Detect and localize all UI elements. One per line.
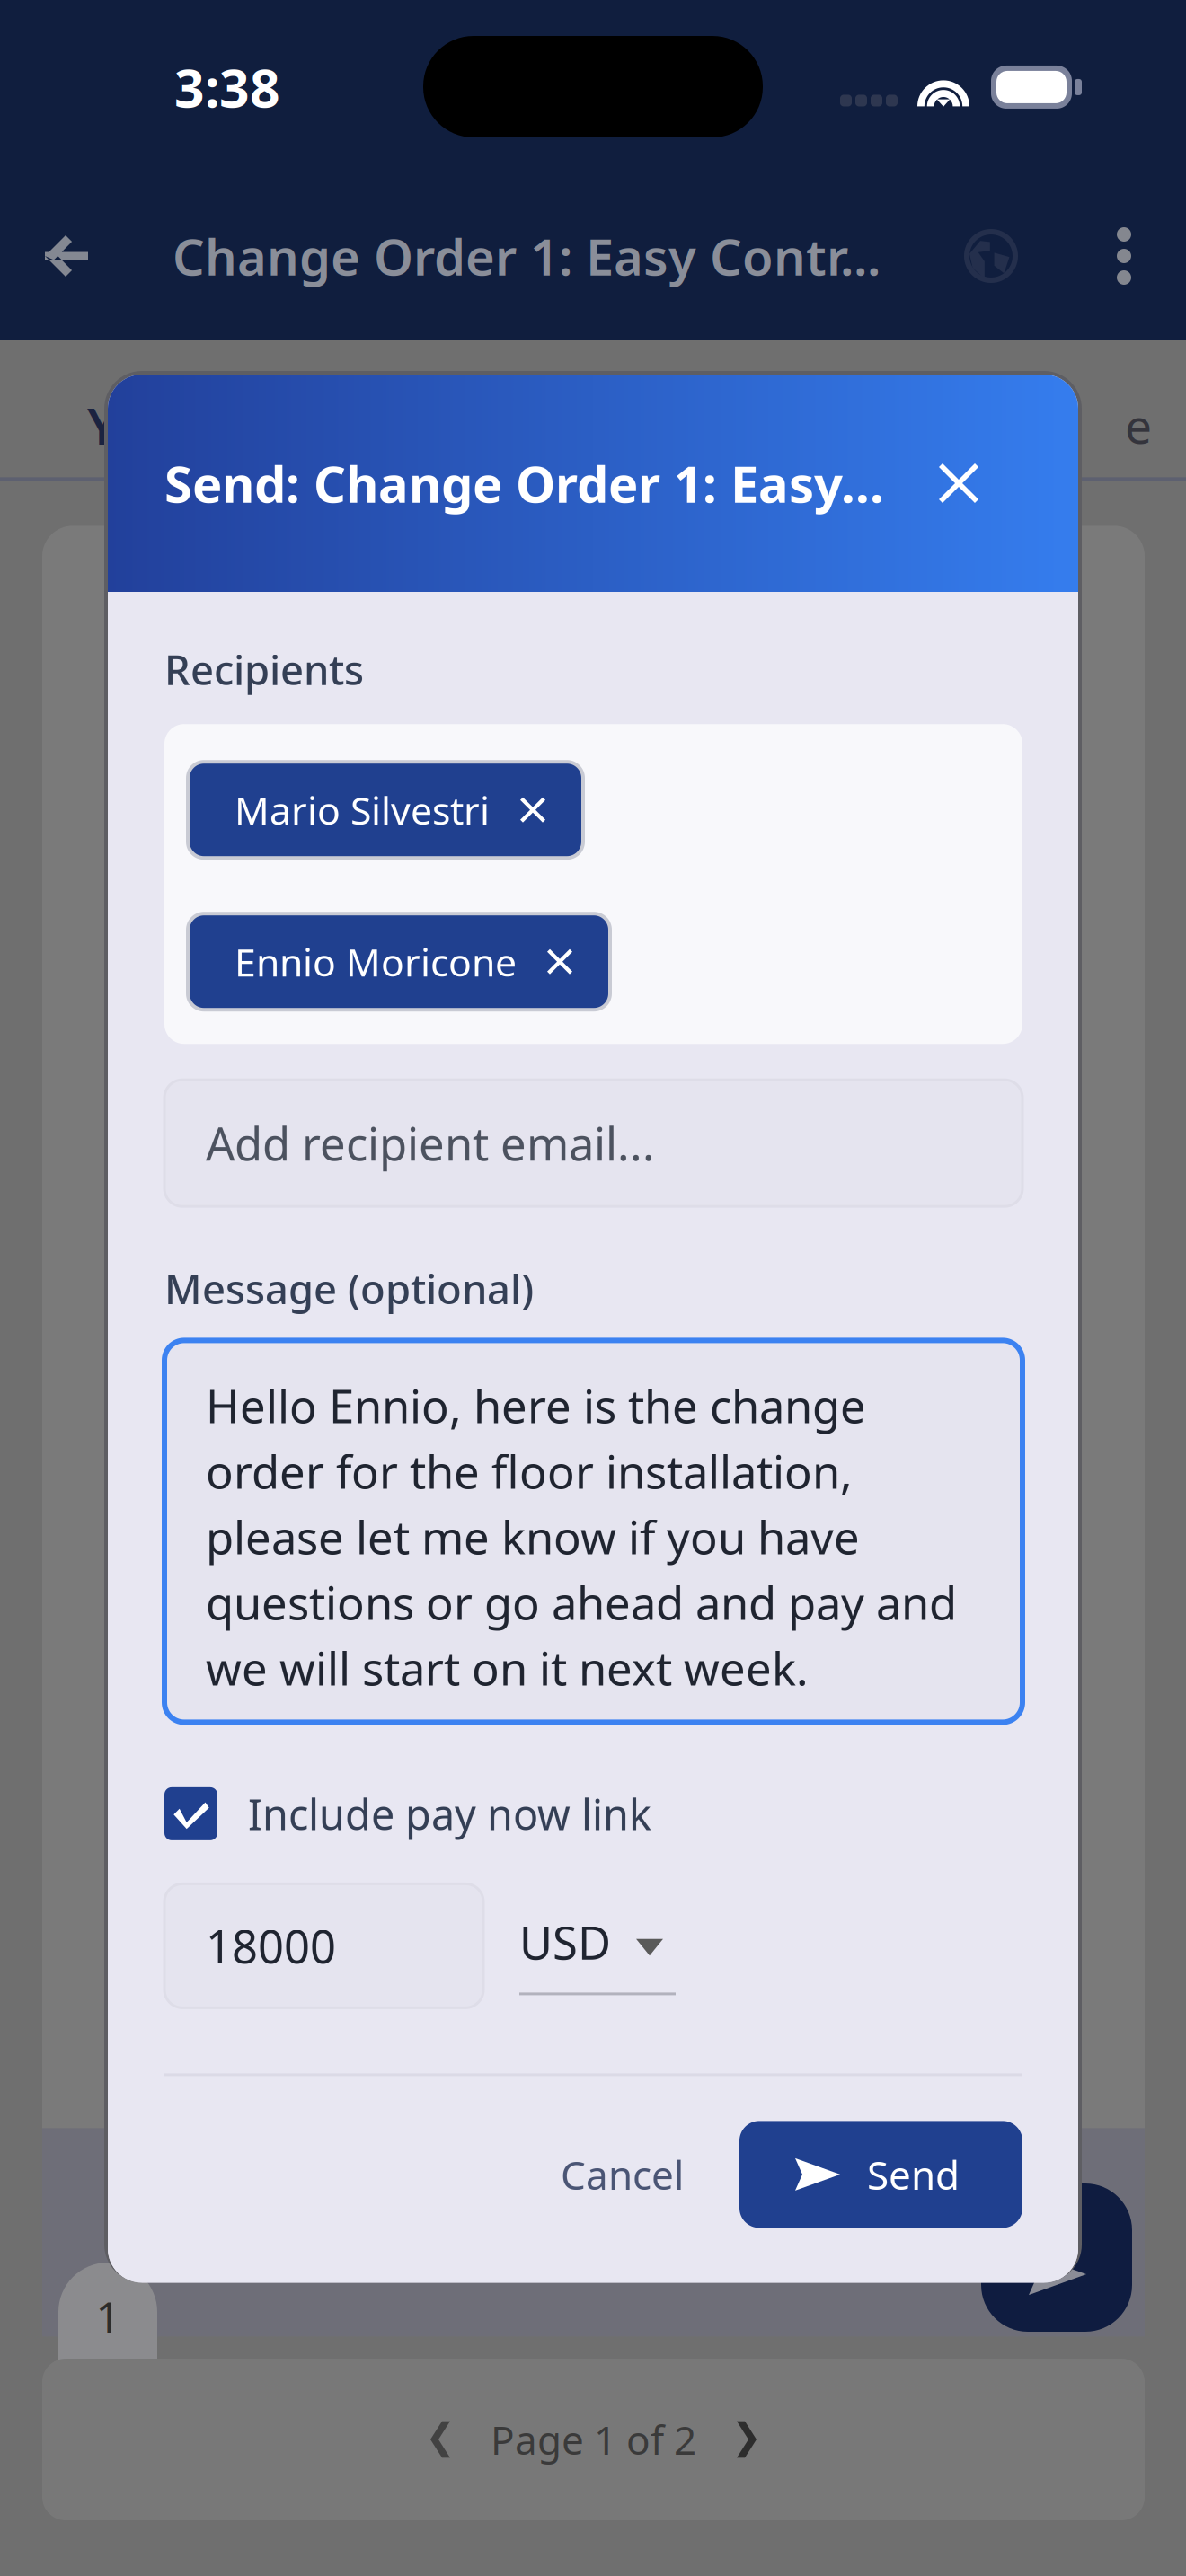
staticText: order for the floor installation, — [206, 1441, 853, 1501]
button[interactable]: More options — [1085, 172, 1163, 340]
staticText: Hello Ennio, here is the change — [206, 1375, 866, 1436]
staticText: Send — [867, 2148, 960, 2201]
button[interactable]: Add recipient email... — [164, 1080, 1022, 1206]
button[interactable]: Mario Silvestri — [188, 762, 583, 858]
button[interactable]: Include pay now link — [164, 1786, 1022, 1842]
staticText: Recipients — [164, 642, 364, 696]
staticText: Change Order 1: Easy Contr... — [173, 223, 881, 289]
button[interactable]: Cancel — [528, 2121, 716, 2228]
staticText: Add recipient email... — [206, 1113, 655, 1173]
button[interactable]: USD — [519, 1884, 699, 1995]
button[interactable]: Next page — [718, 2396, 775, 2483]
button[interactable]: Ennio Moricone — [188, 914, 610, 1010]
button[interactable]: Send — [739, 2121, 1022, 2228]
staticText: 3:38 — [174, 52, 280, 122]
staticText: Send: Change Order 1: Easy... — [164, 450, 884, 517]
staticText: we will start on it next week. — [206, 1638, 809, 1698]
button[interactable]: Back — [23, 172, 110, 340]
button[interactable]: Previous page — [412, 2396, 469, 2483]
button[interactable]: Hello Ennio, here is the change — [164, 1340, 1022, 1722]
staticText: please let me know if you have — [206, 1507, 860, 1567]
staticText: Cancel — [561, 2148, 684, 2201]
button[interactable]: 1 — [58, 2263, 157, 2458]
staticText: 18000 — [206, 1916, 336, 1976]
staticText: 1 — [96, 2288, 120, 2345]
button[interactable]: Send — [981, 2183, 1132, 2332]
button[interactable]: Translate — [897, 172, 1085, 340]
staticText: Message (optional) — [164, 1261, 534, 1315]
staticText: Include pay now link — [248, 1786, 651, 1842]
staticText: Ennio Moricone — [235, 936, 517, 987]
button[interactable]: Close — [916, 440, 1002, 526]
button[interactable]: 18000 — [164, 1884, 483, 2008]
staticText: Y — [87, 392, 118, 458]
staticText: USD — [519, 1912, 611, 1972]
staticText: questions or go ahead and pay and — [206, 1572, 957, 1633]
staticText: Page 1 of 2 — [491, 2413, 696, 2466]
staticText: Mario Silvestri — [235, 784, 490, 835]
staticText: e — [1125, 393, 1152, 457]
